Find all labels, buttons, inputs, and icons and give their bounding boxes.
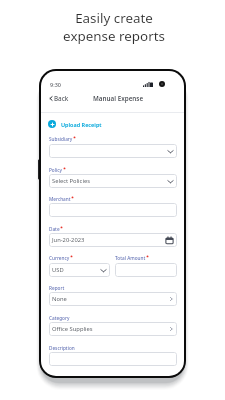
button[interactable]: Upload Receipt xyxy=(41,118,102,130)
staticText: Jun-20-2023 xyxy=(52,236,165,244)
button[interactable]: Select Policies xyxy=(49,174,177,188)
staticText: 9:30 xyxy=(50,81,61,88)
other: Open dropdown xyxy=(167,148,174,155)
button[interactable] xyxy=(49,203,177,217)
staticText: Subsidiary xyxy=(49,136,73,142)
staticText: Manual Expense xyxy=(93,94,144,103)
other: Open xyxy=(168,296,174,302)
staticText: Description xyxy=(49,345,75,351)
staticText: Merchant xyxy=(49,196,71,202)
button[interactable]: Jun-20-2023 xyxy=(49,233,177,247)
button[interactable]: Office Supplies xyxy=(49,322,177,336)
staticText: Policy xyxy=(49,167,63,173)
staticText: Report xyxy=(49,285,65,291)
button[interactable]: Open dropdown xyxy=(49,144,177,158)
staticText: None xyxy=(52,295,168,303)
button[interactable]: Back xyxy=(41,92,73,105)
staticText: Total Amount xyxy=(115,255,146,261)
staticText: Category xyxy=(49,315,70,321)
staticText: USD xyxy=(52,266,100,274)
staticText: Office Supplies xyxy=(52,325,168,333)
other: Pick date xyxy=(165,236,174,245)
staticText: Easily create xyxy=(75,9,153,27)
staticText: Select Policies xyxy=(52,177,167,185)
button[interactable]: USD xyxy=(49,263,110,277)
button[interactable] xyxy=(115,263,177,277)
staticText: expense reports xyxy=(63,27,165,45)
staticText: Back xyxy=(54,94,69,103)
other: Open dropdown xyxy=(167,178,174,185)
staticText: Upload Receipt xyxy=(61,121,102,128)
button[interactable]: None xyxy=(49,292,177,306)
button[interactable] xyxy=(49,352,177,366)
other: Open xyxy=(168,326,174,332)
staticText: Currency xyxy=(49,255,70,261)
staticText: Date xyxy=(49,226,60,232)
other: Open dropdown xyxy=(100,267,107,274)
